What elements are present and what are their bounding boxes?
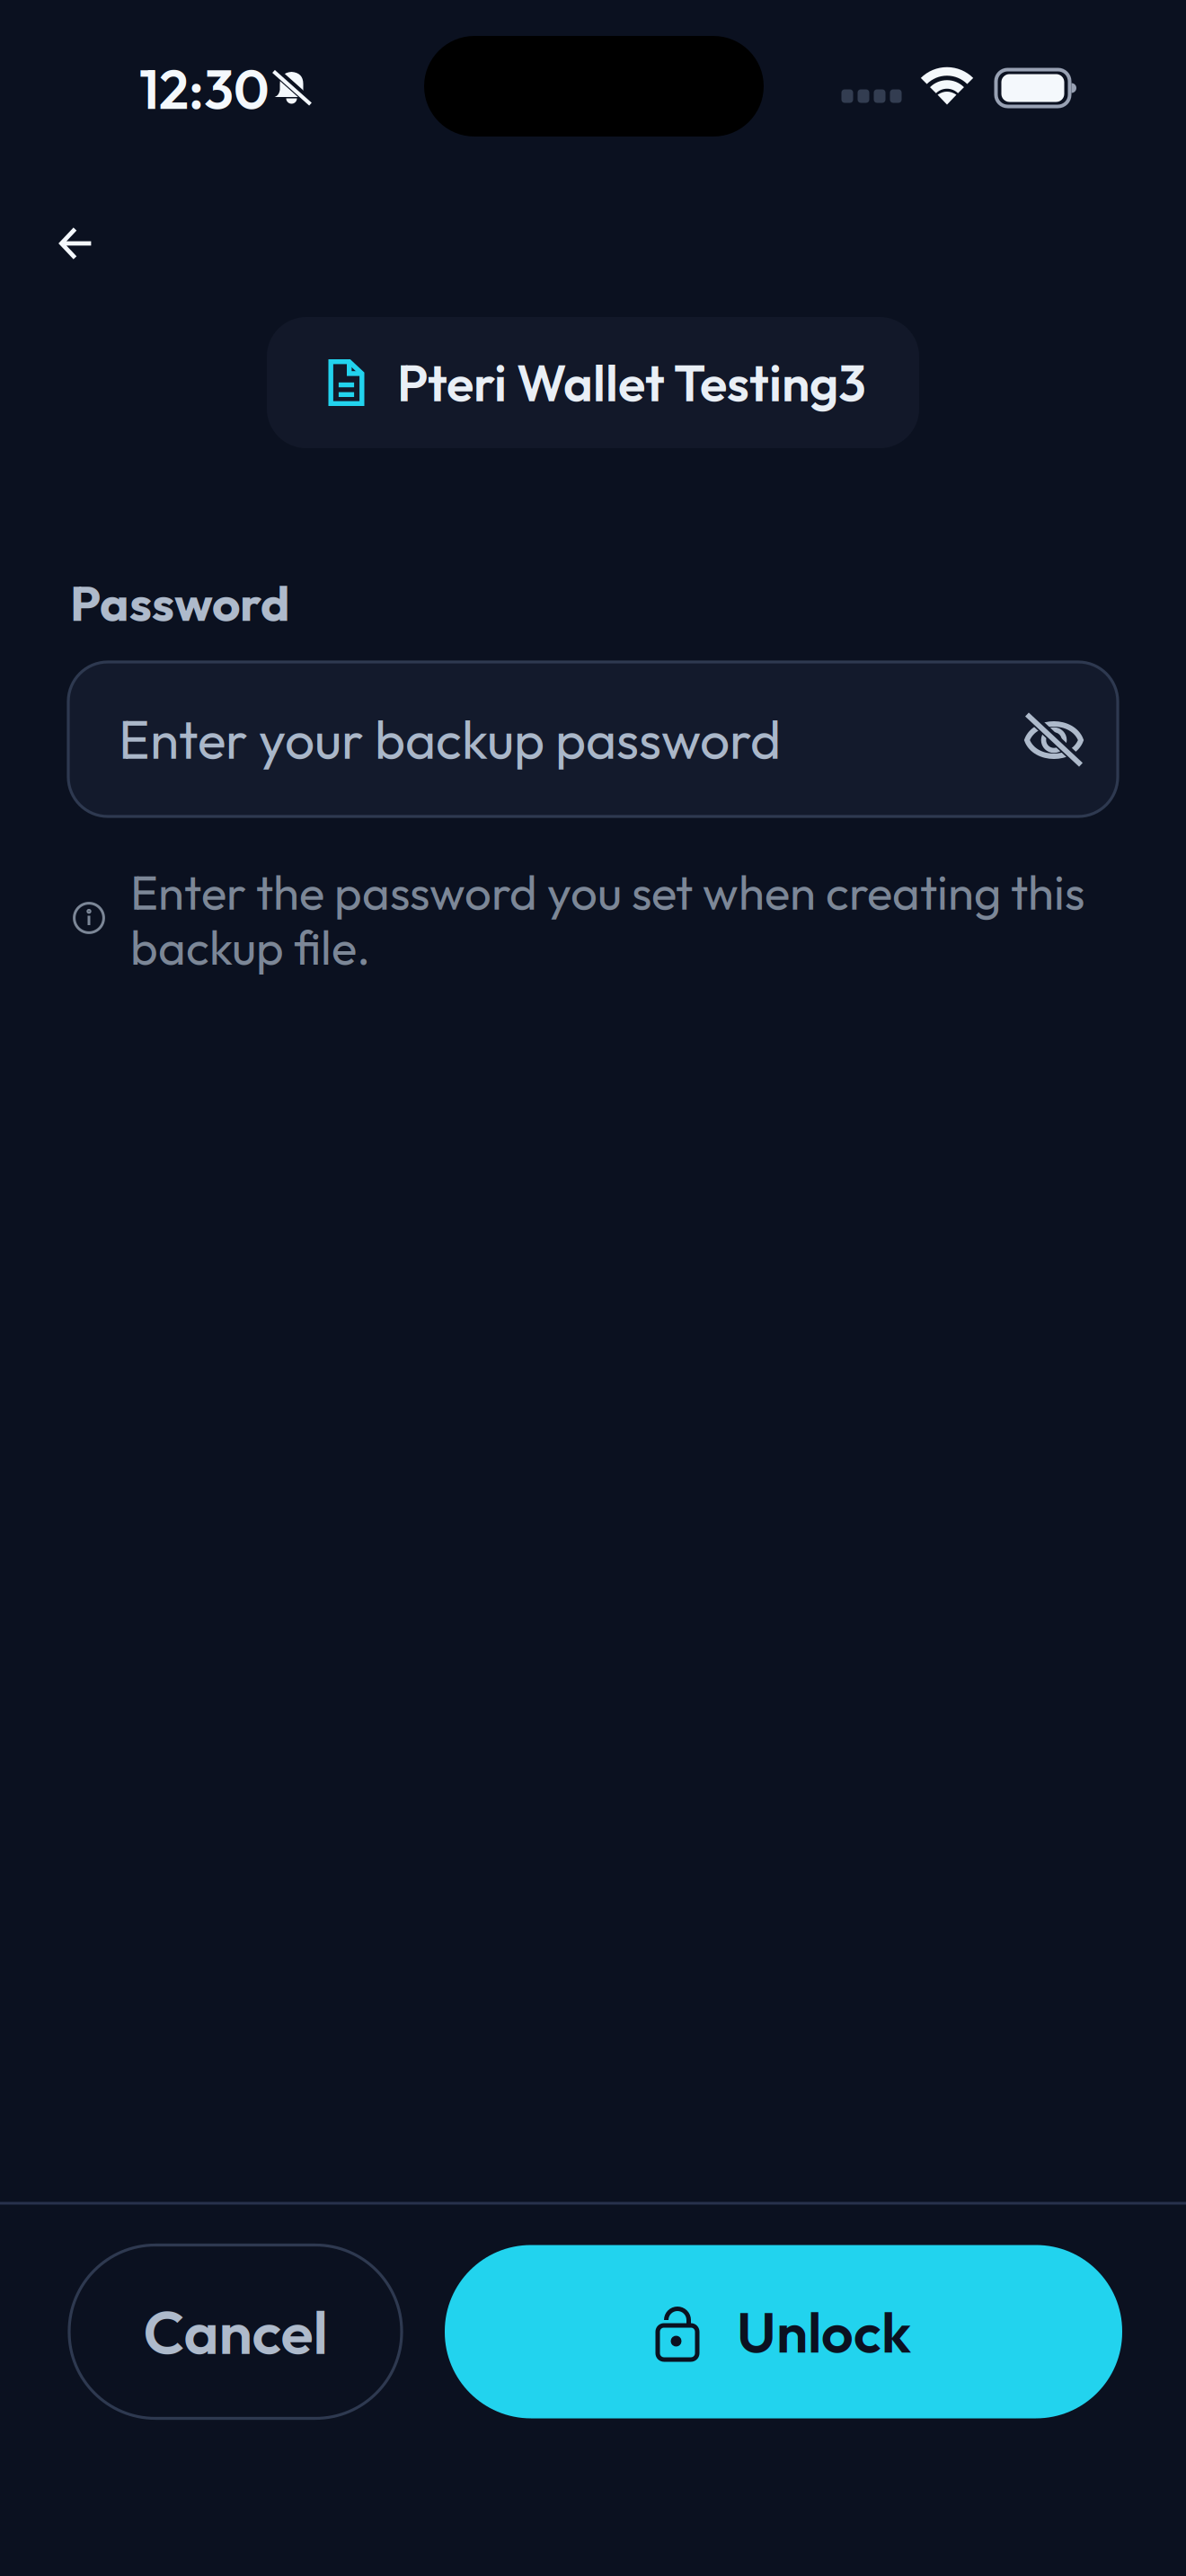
staticText: Password xyxy=(70,572,290,634)
staticText: Unlock xyxy=(737,2296,911,2367)
staticText: 12:30 xyxy=(139,55,270,123)
staticText: backup file. xyxy=(130,917,370,977)
button[interactable]: Back xyxy=(31,198,121,288)
button[interactable]: Cancel xyxy=(69,2245,402,2418)
staticText: Enter the password you set when creating… xyxy=(130,862,1084,922)
staticText: Enter your backup password xyxy=(119,706,781,772)
staticText: Pteri Wallet Testing3 xyxy=(397,351,866,414)
button[interactable]: Unlock xyxy=(445,2245,1122,2418)
staticText: Cancel xyxy=(143,2294,327,2369)
button[interactable]: Show password xyxy=(1009,694,1099,784)
